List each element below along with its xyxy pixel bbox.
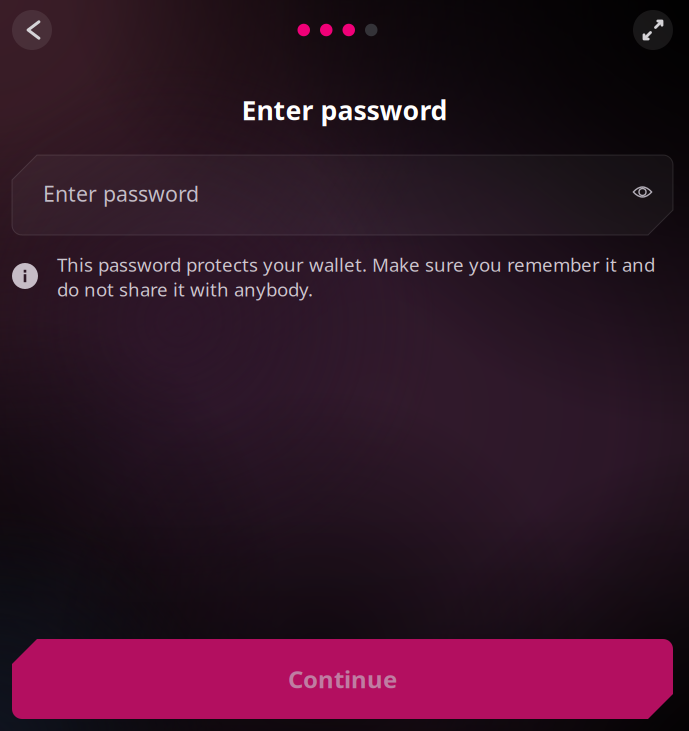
staticText: Continue <box>288 663 397 695</box>
button[interactable]: Continue <box>12 639 673 719</box>
staticText: This password protects your wallet. Make… <box>57 252 655 302</box>
staticText: Enter password <box>43 179 199 208</box>
staticText: Enter password <box>241 92 447 128</box>
button[interactable]: Show password <box>624 174 660 210</box>
button[interactable]: Back <box>12 10 52 50</box>
button[interactable]: Expand <box>633 10 673 50</box>
